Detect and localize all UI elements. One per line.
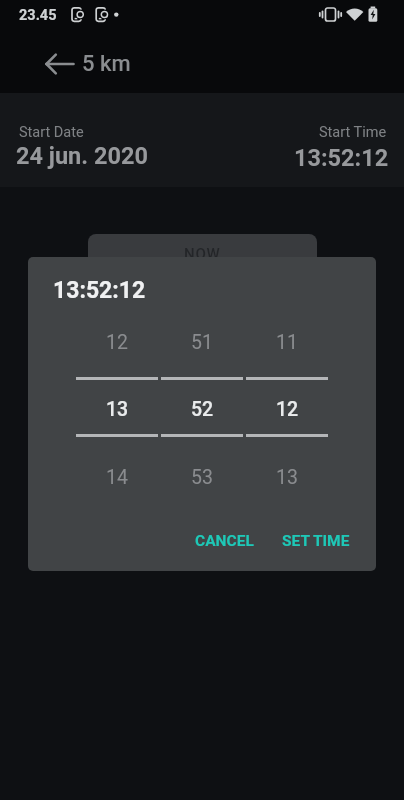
staticText: 14 bbox=[106, 466, 128, 489]
staticText: 13 bbox=[106, 398, 129, 421]
button[interactable]: CANCEL bbox=[185, 527, 263, 555]
button[interactable]: NOW bbox=[88, 234, 317, 258]
staticText: 5 km bbox=[82, 51, 131, 77]
staticText: 13:52:12 bbox=[294, 144, 389, 172]
button[interactable]: SET TIME bbox=[273, 527, 358, 555]
staticText: 13 bbox=[276, 466, 298, 489]
button[interactable] bbox=[38, 44, 82, 84]
staticText: 11 bbox=[276, 331, 298, 354]
staticText: Start Date bbox=[19, 124, 84, 141]
staticText: 13:52:12 bbox=[53, 277, 146, 304]
staticText: 12 bbox=[276, 398, 299, 421]
staticText: 12 bbox=[106, 331, 128, 354]
staticText: 23.45 bbox=[19, 7, 57, 24]
staticText: Start Time bbox=[319, 124, 387, 141]
staticText: SET TIME bbox=[282, 532, 350, 550]
staticText: 53 bbox=[191, 466, 213, 489]
staticText: 24 jun. 2020 bbox=[16, 142, 148, 170]
staticText: CANCEL bbox=[195, 532, 254, 550]
staticText: NOW bbox=[184, 245, 221, 258]
staticText: 52 bbox=[191, 398, 214, 421]
staticText: 51 bbox=[191, 331, 213, 354]
